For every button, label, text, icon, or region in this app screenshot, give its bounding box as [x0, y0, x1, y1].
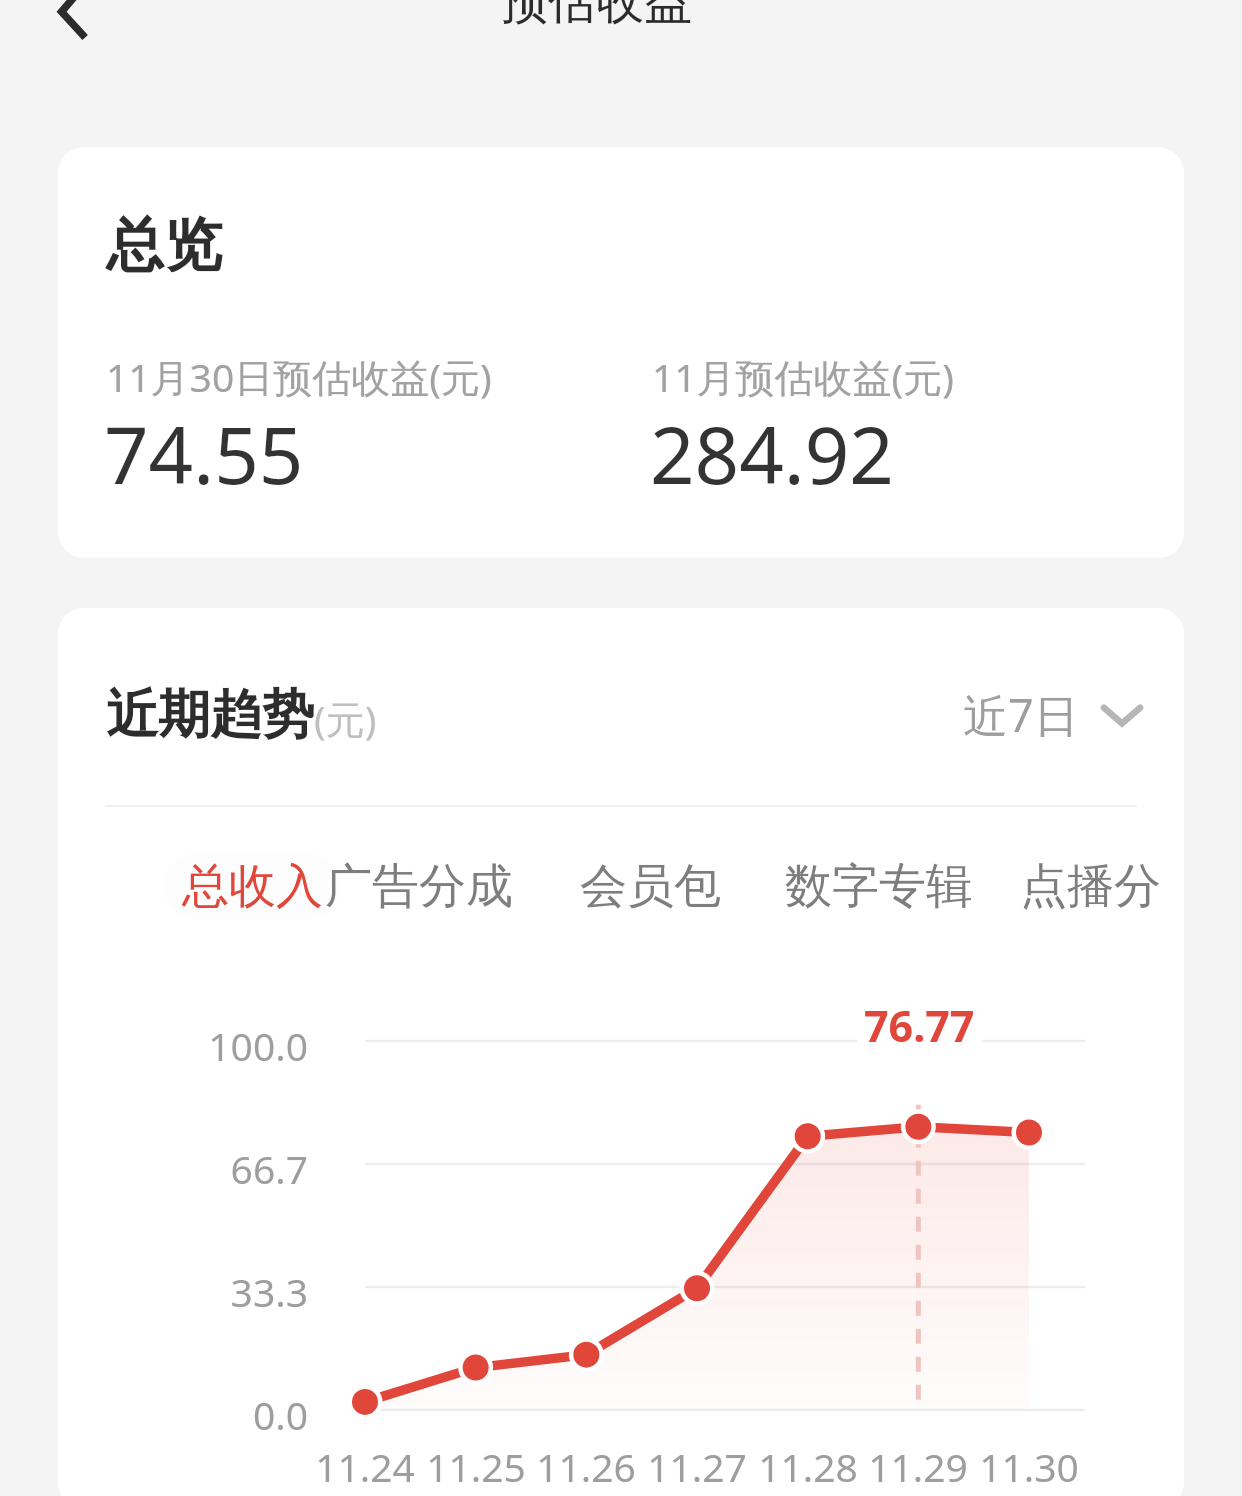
- button[interactable]: 会员包: [580, 853, 721, 919]
- staticText: 76.77: [864, 996, 975, 1055]
- staticText: 11月30日预估收益(元): [106, 350, 492, 403]
- staticText: 数字专辑: [785, 857, 973, 916]
- staticText: 11.30: [971, 1440, 1087, 1493]
- staticText: 11.26: [528, 1440, 644, 1493]
- staticText: 100.0: [116, 1019, 308, 1072]
- staticText: 近期趋势: [106, 682, 314, 748]
- staticText: 近7日: [963, 684, 1079, 745]
- staticText: 11月预估收益(元): [652, 350, 955, 403]
- staticText: 预估收益: [500, 0, 692, 32]
- staticText: 11.24: [307, 1440, 423, 1493]
- staticText: 总收入: [182, 857, 323, 916]
- staticText: (元): [314, 692, 377, 745]
- staticText: 66.7: [116, 1142, 308, 1195]
- staticText: 11.29: [860, 1440, 976, 1493]
- button[interactable]: 点播分: [1020, 853, 1161, 919]
- staticText: 点播分: [1020, 857, 1161, 916]
- staticText: 284.92: [650, 401, 894, 507]
- staticText: 0.0: [116, 1388, 308, 1441]
- button[interactable]: 近7日: [963, 684, 1143, 745]
- staticText: 广告分成: [325, 857, 513, 916]
- staticText: 33.3: [116, 1265, 308, 1318]
- staticText: 11.25: [418, 1440, 534, 1493]
- staticText: 74.55: [104, 401, 304, 507]
- staticText: 11.27: [639, 1440, 755, 1493]
- staticText: 总览: [106, 209, 222, 282]
- staticText: 会员包: [580, 857, 721, 916]
- button[interactable]: 总收入: [163, 853, 341, 919]
- button[interactable]: 广告分成: [325, 853, 513, 919]
- button[interactable]: 数字专辑: [785, 853, 973, 919]
- button[interactable]: Back: [38, 0, 114, 52]
- staticText: 11.28: [750, 1440, 866, 1493]
